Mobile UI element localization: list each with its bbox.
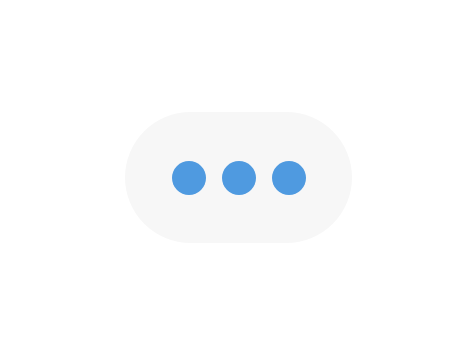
button[interactable]: Typing indicator xyxy=(125,112,352,243)
